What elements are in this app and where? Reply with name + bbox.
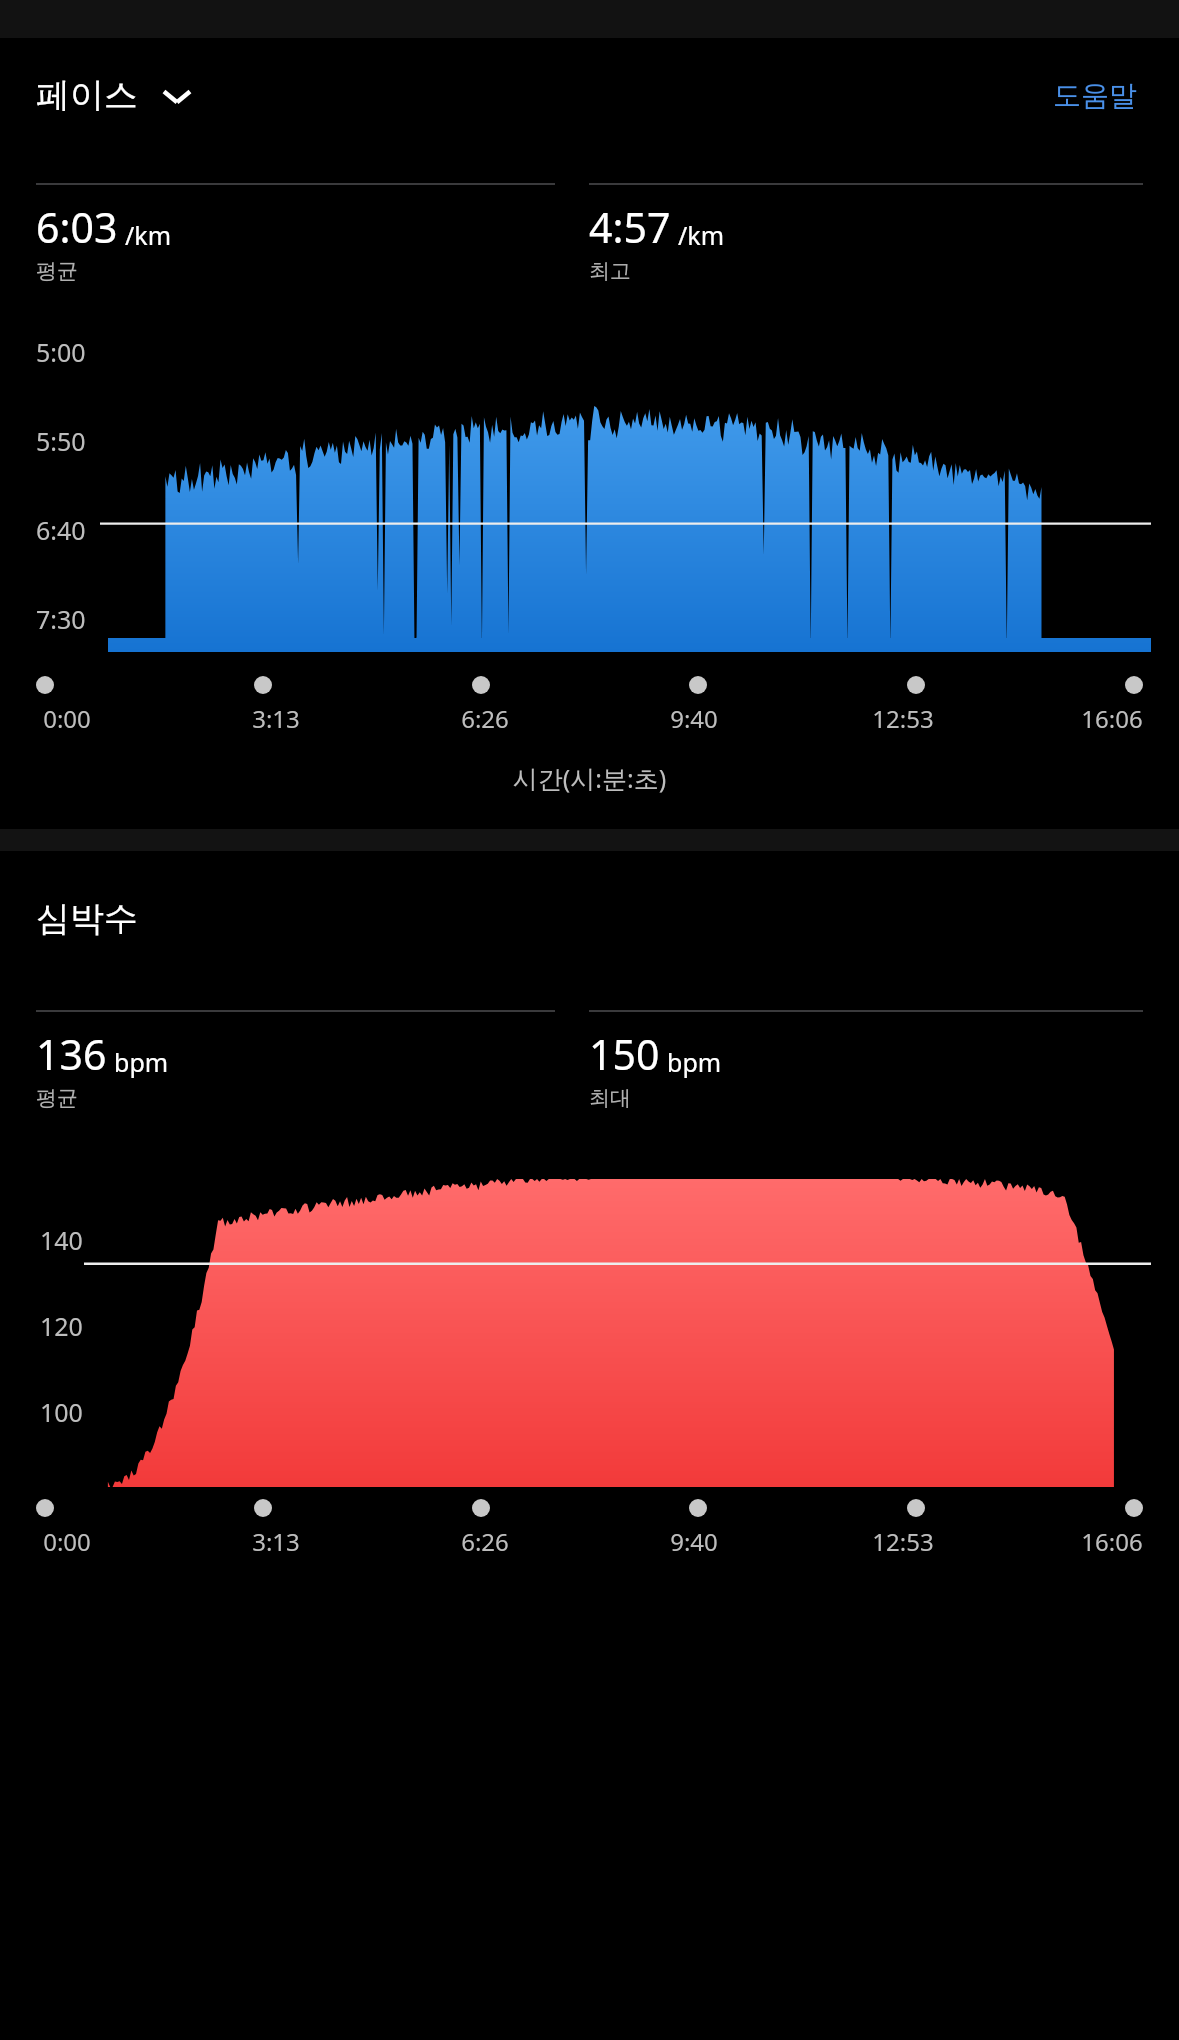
staticText: 3:13 [252, 1525, 300, 1558]
button[interactable]: 도움말 [1047, 72, 1143, 119]
staticText: 평균 [36, 258, 78, 284]
staticText: 0:00 [43, 1525, 91, 1558]
staticText: bpm [667, 1045, 722, 1079]
staticText: 6:26 [461, 1525, 509, 1558]
staticText: 150 [589, 1026, 660, 1082]
staticText: 16:06 [1081, 1525, 1143, 1558]
staticText: 9:40 [670, 702, 718, 735]
staticText: 5:50 [36, 424, 86, 458]
button[interactable]: 페이스 [36, 68, 194, 123]
button[interactable]: 심박수 [36, 897, 138, 940]
staticText: 최대 [589, 1085, 631, 1111]
staticText: 도움말 [1053, 78, 1137, 113]
staticText: /km [125, 218, 172, 252]
staticText: 136 [36, 1026, 107, 1082]
staticText: 120 [40, 1309, 83, 1343]
staticText: 최고 [589, 258, 631, 284]
staticText: 140 [40, 1223, 83, 1257]
staticText: 16:06 [1081, 702, 1143, 735]
staticText: 6:26 [461, 702, 509, 735]
staticText: 100 [40, 1395, 83, 1429]
staticText: 평균 [36, 1085, 78, 1111]
staticText: 5:00 [36, 335, 86, 369]
staticText: 7:30 [36, 602, 86, 636]
staticText: bpm [114, 1045, 169, 1079]
staticText: 0:00 [43, 702, 91, 735]
staticText: 3:13 [252, 702, 300, 735]
staticText: 4:57 [589, 199, 671, 255]
staticText: 9:40 [670, 1525, 718, 1558]
staticText: 12:53 [872, 702, 934, 735]
staticText: /km [678, 218, 725, 252]
staticText: 시간(시:분:초) [0, 761, 1179, 795]
staticText: 페이스 [36, 74, 138, 117]
staticText: 12:53 [872, 1525, 934, 1558]
staticText: 6:40 [36, 513, 86, 547]
staticText: 심박수 [36, 897, 138, 940]
other: Expand [160, 85, 194, 107]
staticText: 6:03 [36, 199, 118, 255]
